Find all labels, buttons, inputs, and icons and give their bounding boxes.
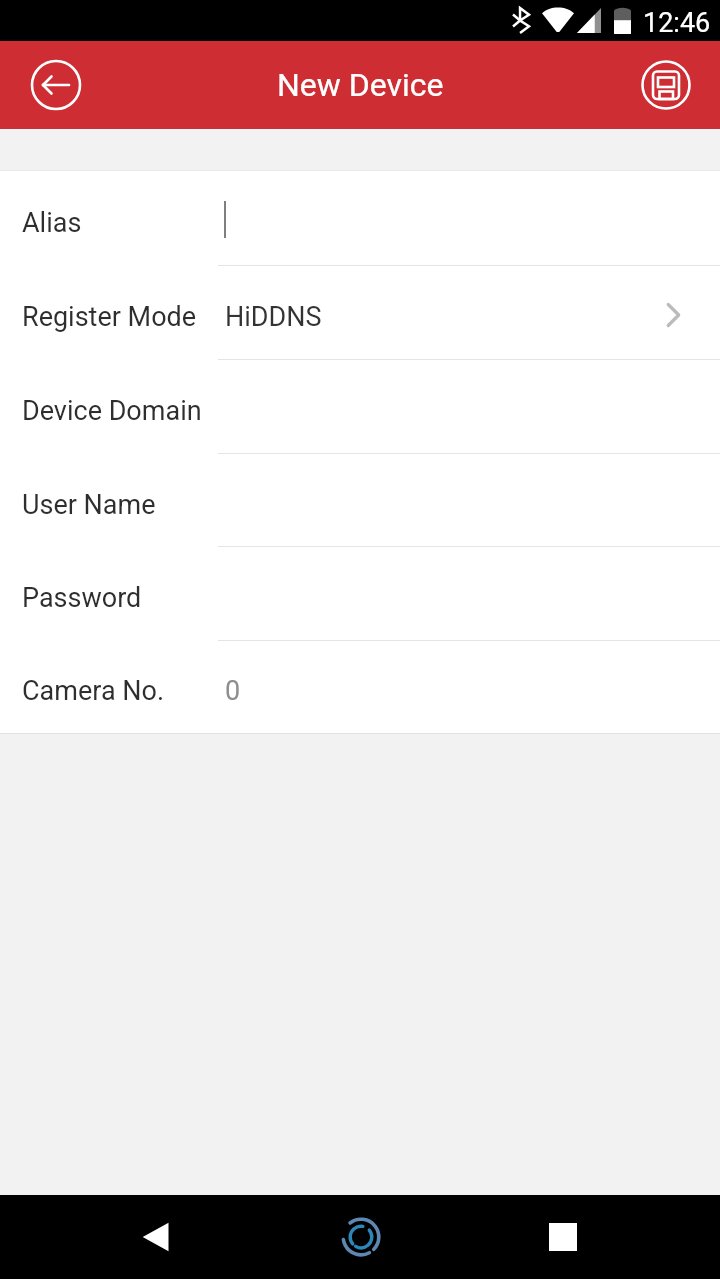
staticText: Register Mode	[22, 301, 197, 333]
button[interactable]: Save	[634, 53, 698, 117]
button[interactable]: Device Domain	[0, 360, 720, 454]
staticText: 12:46	[643, 7, 711, 39]
button[interactable]: Home	[323, 1199, 399, 1275]
staticText: Password	[22, 582, 142, 614]
button[interactable]: Back	[24, 53, 88, 117]
button[interactable]: Camera No.	[0, 641, 720, 733]
staticText: 0	[225, 675, 241, 707]
button[interactable]: Back	[121, 1199, 197, 1275]
button[interactable]: Register Mode	[0, 266, 720, 360]
staticText: Camera No.	[22, 675, 165, 707]
staticText: HiDDNS	[225, 301, 322, 333]
staticText: User Name	[22, 489, 156, 521]
staticText: New Device	[277, 66, 444, 104]
button[interactable]: User Name	[0, 454, 720, 547]
button[interactable]: Alias	[0, 171, 720, 266]
button[interactable]: Password	[0, 547, 720, 641]
staticText: Device Domain	[22, 395, 202, 427]
button[interactable]: Recents	[525, 1199, 601, 1275]
staticText: Alias	[22, 207, 82, 239]
